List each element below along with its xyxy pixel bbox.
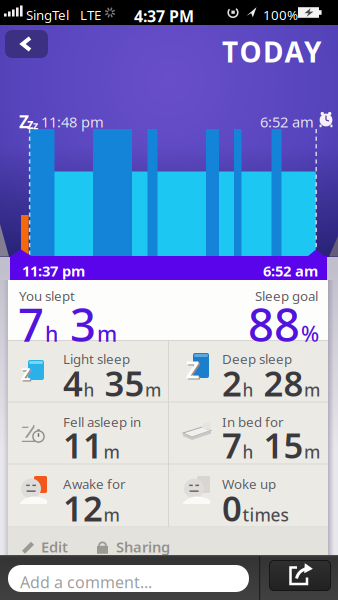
staticText: 11:37 pm	[22, 261, 85, 280]
staticText: Z	[186, 354, 199, 381]
staticText: Z	[19, 110, 29, 133]
staticText: 7	[222, 422, 242, 468]
button[interactable]	[5, 30, 48, 58]
staticText: m	[103, 503, 119, 526]
staticText: m	[103, 440, 119, 463]
staticText: 11:48 pm	[41, 112, 104, 131]
staticText: h	[242, 440, 253, 463]
staticText: 4:37 PM	[134, 5, 194, 25]
staticText: 28	[263, 360, 303, 406]
staticText: Fell asleep in	[63, 413, 141, 431]
staticText: Z	[22, 365, 31, 383]
staticText: Z	[21, 363, 30, 383]
staticText: 35	[104, 360, 144, 406]
staticText: Sleep goal	[255, 287, 318, 305]
staticText: h	[242, 378, 253, 401]
staticText: h	[83, 378, 94, 401]
staticText: z	[27, 115, 34, 133]
staticText: 12	[63, 485, 103, 531]
staticText: 15	[263, 422, 303, 468]
staticText: 3	[70, 294, 96, 354]
staticText: 88	[248, 294, 300, 354]
staticText: m	[145, 378, 161, 401]
staticText: m	[304, 378, 320, 401]
staticText: 6:52 am	[260, 112, 314, 131]
staticText: TODAY	[222, 33, 322, 70]
staticText: SingTel	[26, 6, 69, 24]
staticText: m	[97, 319, 117, 347]
staticText	[254, 360, 263, 406]
staticText: Add a comment...	[20, 571, 152, 592]
staticText: m	[304, 440, 320, 463]
staticText	[59, 322, 69, 347]
staticText: 11	[63, 422, 103, 468]
staticText: Edit	[41, 537, 68, 556]
button[interactable]	[269, 560, 331, 591]
staticText: 100%	[263, 6, 298, 24]
button[interactable]: Add a comment...	[8, 565, 249, 592]
staticText: In bed for	[222, 413, 284, 431]
staticText: times	[242, 503, 288, 526]
staticText: LTE	[80, 6, 101, 24]
button[interactable]: Sharing	[95, 537, 170, 556]
staticText	[254, 422, 263, 468]
staticText: Deep sleep	[222, 350, 292, 368]
staticText: z	[33, 118, 38, 132]
staticText: Z	[21, 417, 35, 443]
staticText: Woke up	[222, 475, 276, 493]
staticText: Z	[20, 415, 34, 443]
staticText	[95, 360, 104, 406]
staticText: Z	[187, 356, 200, 381]
staticText: h	[45, 319, 58, 347]
staticText: You slept	[19, 287, 75, 305]
staticText: 2	[222, 360, 242, 406]
staticText: Light sleep	[63, 350, 130, 368]
staticText: 6:52 am	[263, 261, 318, 280]
staticText: 7	[18, 294, 44, 354]
button[interactable]: Edit	[20, 537, 68, 556]
staticText: Awake for	[63, 475, 126, 493]
staticText: 4	[63, 360, 83, 406]
staticText: %	[301, 319, 319, 347]
staticText: 0	[222, 485, 242, 531]
staticText: Sharing	[116, 537, 170, 556]
